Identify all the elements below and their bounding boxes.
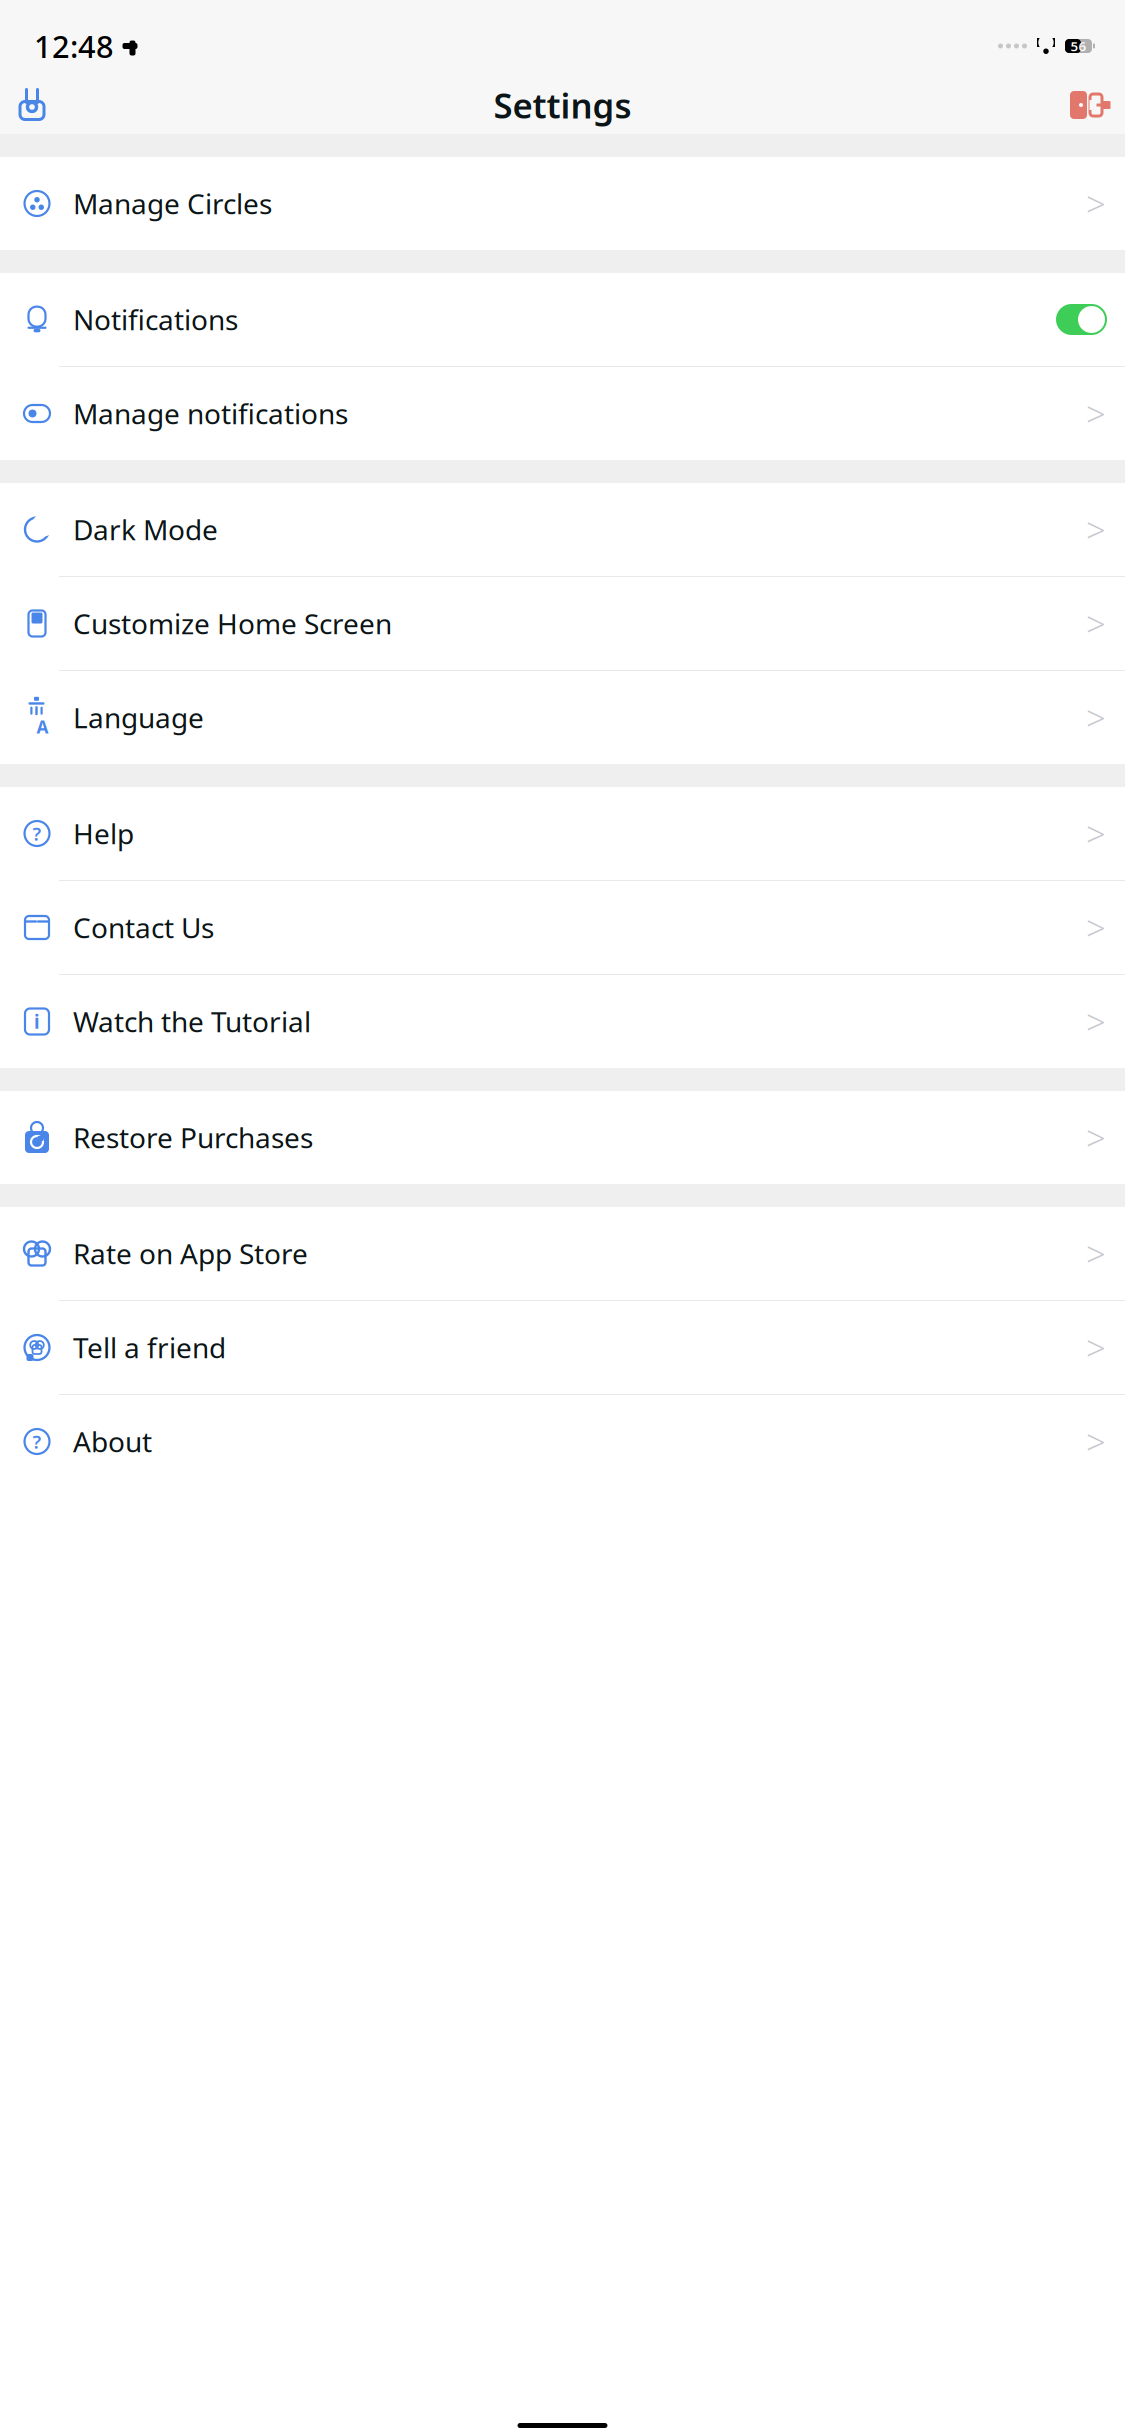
button[interactable]: i	[0, 975, 1125, 1068]
staticText: Help	[73, 815, 134, 852]
button[interactable]: Customize Home Screen	[0, 577, 1125, 670]
button[interactable]: Rate on App Store	[0, 1207, 1125, 1300]
button[interactable]: Restore Purchases	[0, 1091, 1125, 1184]
staticText: Customize Home Screen	[73, 605, 392, 642]
staticText: ?	[32, 1429, 41, 1454]
staticText: >	[1086, 600, 1106, 646]
button[interactable]: Home	[10, 83, 54, 127]
staticText: Manage Circles	[73, 185, 272, 222]
button[interactable]: Dark Mode	[0, 483, 1125, 576]
button[interactable]: Log out	[1067, 83, 1111, 127]
staticText: >	[1086, 904, 1106, 950]
staticText: >	[1086, 810, 1106, 856]
staticText: i	[34, 1009, 40, 1034]
staticText: >	[1086, 998, 1106, 1044]
staticText: 12:48	[34, 26, 114, 66]
staticText: 56	[1070, 37, 1086, 55]
button[interactable]: ?	[0, 1395, 1125, 1488]
staticText: Contact Us	[73, 909, 214, 946]
staticText: >	[1086, 180, 1106, 226]
button[interactable]: Manage Circles	[0, 157, 1125, 250]
staticText: Tell a friend	[73, 1329, 226, 1366]
staticText: About	[73, 1423, 152, 1460]
staticText: >	[1086, 390, 1106, 436]
button[interactable]: A	[0, 671, 1125, 764]
staticText: Manage notifications	[73, 395, 348, 432]
button[interactable]: Notifications	[0, 273, 1125, 366]
staticText: >	[1086, 1324, 1106, 1370]
staticText: >	[1086, 694, 1106, 740]
button[interactable]: Notifications on	[1056, 304, 1107, 335]
staticText: Restore Purchases	[73, 1119, 313, 1156]
staticText: >	[1086, 506, 1106, 552]
staticText: Dark Mode	[73, 511, 218, 548]
staticText: Notifications	[73, 301, 238, 338]
staticText: Rate on App Store	[73, 1235, 308, 1272]
button[interactable]: ?	[0, 787, 1125, 880]
staticText: Settings	[493, 82, 631, 128]
staticText: Language	[73, 699, 204, 736]
staticText: ?	[32, 821, 41, 846]
staticText: Watch the Tutorial	[73, 1003, 311, 1040]
button[interactable]: Contact Us	[0, 881, 1125, 974]
staticText: A	[36, 715, 48, 738]
staticText: >	[1086, 1418, 1106, 1464]
staticText: >	[1086, 1230, 1106, 1276]
button[interactable]: Manage notifications	[0, 367, 1125, 460]
button[interactable]: Tell a friend	[0, 1301, 1125, 1394]
staticText: >	[1086, 1114, 1106, 1160]
